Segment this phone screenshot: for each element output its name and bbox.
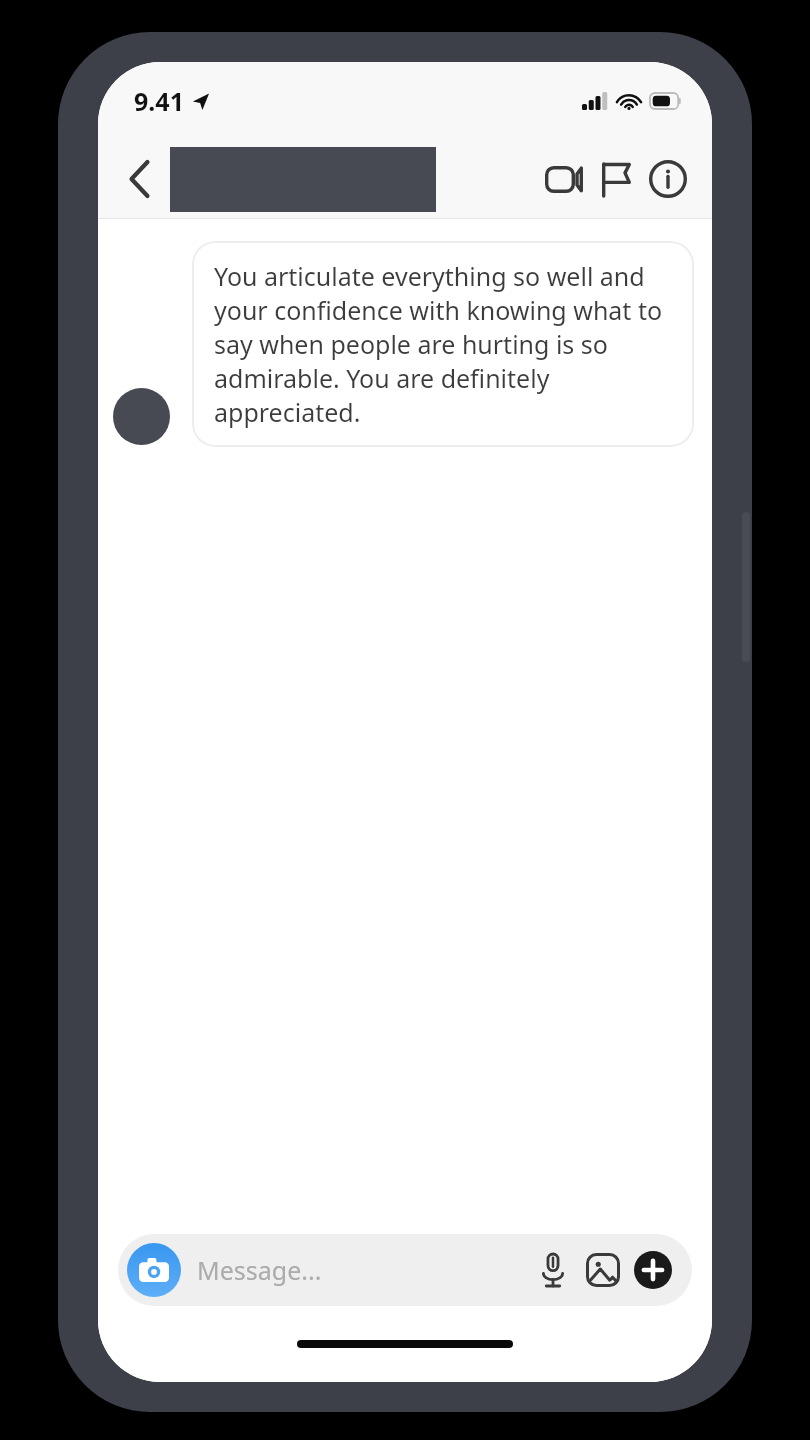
button[interactable]: Add [628, 1245, 678, 1295]
staticText: Message... [197, 1253, 322, 1287]
staticText: You articulate everything so well and yo… [214, 259, 672, 429]
button[interactable]: Photo gallery [578, 1245, 628, 1295]
staticText: 9.41 [134, 84, 184, 118]
button[interactable]: You articulate everything so well and yo… [192, 241, 694, 447]
button[interactable]: Back [112, 152, 166, 206]
button[interactable]: Camera [127, 1243, 181, 1297]
button[interactable]: Profile photo [113, 388, 170, 445]
button[interactable]: Voice message [528, 1245, 578, 1295]
button[interactable]: Camera [118, 1234, 692, 1306]
button[interactable]: Info [642, 153, 694, 205]
button[interactable]: Report [590, 153, 642, 205]
button[interactable]: Video call [538, 153, 590, 205]
